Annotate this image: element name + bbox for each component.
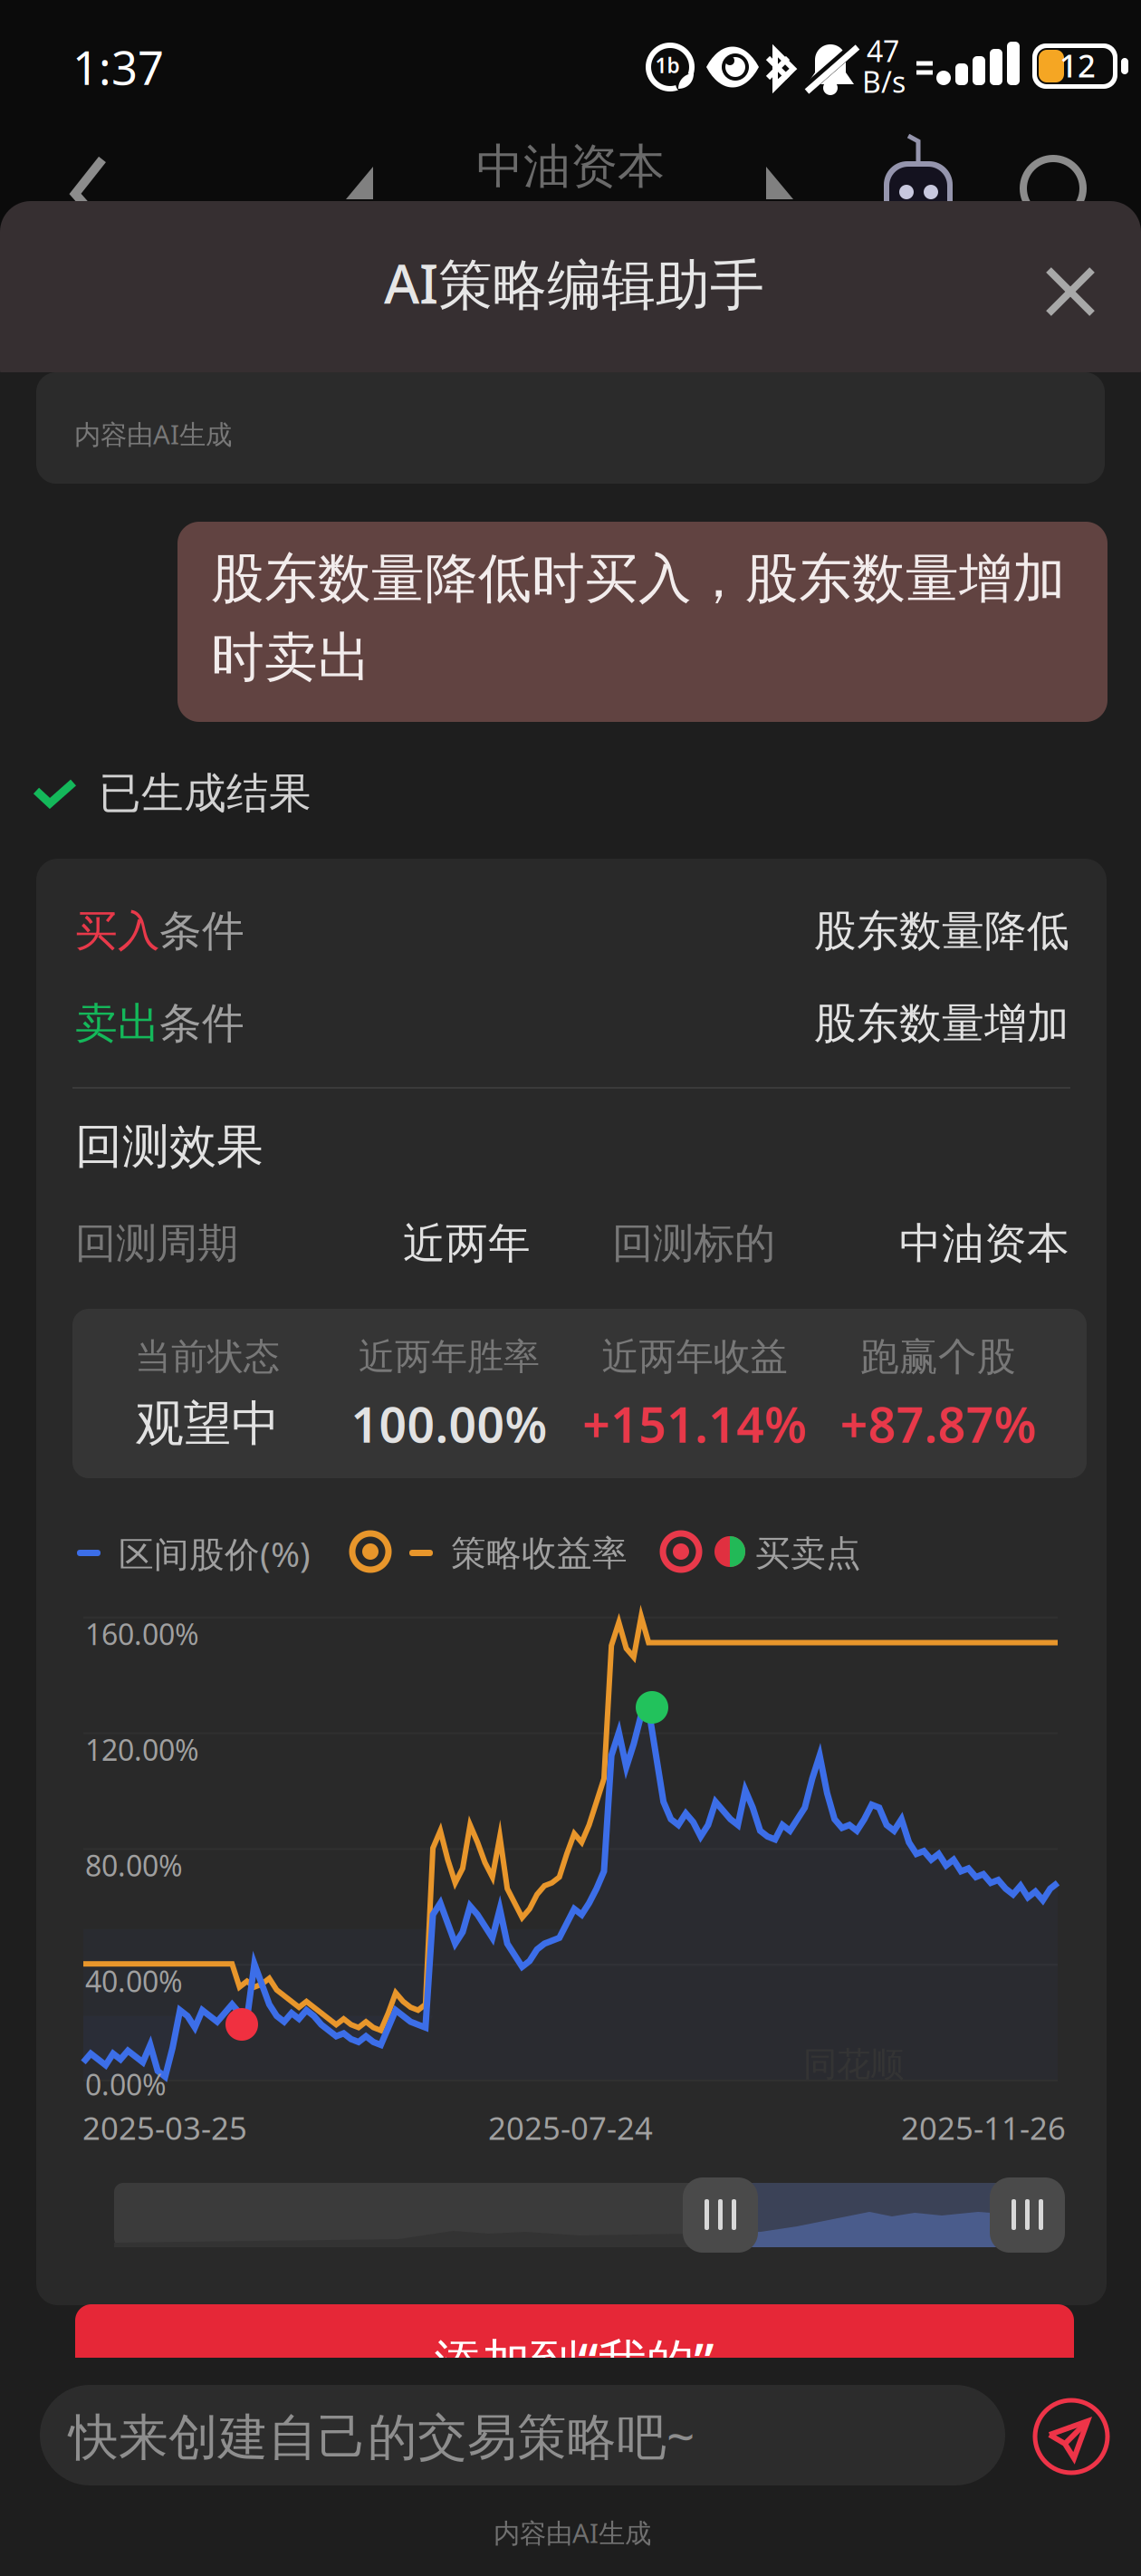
staticText: 近两年收益 — [602, 1334, 787, 1380]
staticText: 47 — [867, 32, 899, 70]
staticText: 股东数量降低时买入，股东数量增加 — [211, 546, 1066, 611]
staticText: 1:37 — [72, 37, 164, 98]
staticText: 条件 — [159, 905, 244, 957]
staticText: 1b — [655, 52, 680, 79]
staticText: 已生成结果 — [99, 767, 312, 819]
staticText: 观望中 — [135, 1394, 279, 1453]
staticText: 跑赢个股 — [860, 1333, 1016, 1381]
staticText: B/s — [862, 62, 906, 101]
staticText: 2025-07-24 — [488, 2107, 653, 2148]
staticText: 中油资本 — [476, 138, 665, 196]
button[interactable]: 关闭 — [0, 0, 1141, 2576]
staticText: 80.00% — [85, 1846, 183, 1885]
staticText: 条件 — [159, 998, 244, 1049]
button[interactable]: 调整区间 — [0, 0, 1141, 2576]
button[interactable]: 发送 — [0, 0, 1141, 2576]
staticText: 2025-03-25 — [82, 2107, 247, 2148]
staticText: 区间股价(%) — [119, 1530, 311, 1577]
staticText: 近两年 — [403, 1218, 531, 1270]
staticText: 回测标的 — [612, 1218, 775, 1269]
button[interactable]: 添加到“我的” — [0, 0, 1141, 2576]
staticText: 股东数量降低 — [814, 905, 1069, 957]
staticText: 添加到“我的” — [434, 2328, 714, 2392]
staticText: 160.00% — [85, 1615, 199, 1653]
staticText: 100.00% — [351, 1392, 547, 1456]
staticText: 股东数量增加 — [814, 998, 1069, 1049]
staticText: AI策略编辑助手 — [384, 246, 764, 319]
staticText: 2025-11-26 — [901, 2107, 1066, 2148]
staticText: 快来创建自己的交易策略吧~ — [69, 2403, 695, 2468]
staticText: 内容由AI生成 — [494, 2515, 651, 2550]
staticText: +151.14% — [582, 1392, 807, 1456]
staticText: 40.00% — [85, 1962, 183, 2000]
staticText: 时卖出 — [211, 625, 371, 690]
button[interactable]: 快来创建自己的交易策略吧~ — [0, 0, 1141, 2576]
staticText: 当前状态 — [135, 1335, 280, 1379]
staticText: +87.87% — [840, 1392, 1036, 1456]
staticText: 回测效果 — [75, 1118, 264, 1176]
staticText: 买入 — [75, 905, 160, 957]
staticText: 近两年胜率 — [359, 1335, 540, 1379]
staticText: 策略收益率 — [451, 1532, 628, 1575]
staticText: 内容由AI生成 — [74, 416, 232, 452]
staticText: 0.00% — [85, 2065, 167, 2103]
staticText: 120.00% — [85, 1730, 199, 1769]
button[interactable]: 调整区间 — [0, 0, 1141, 2576]
staticText: 中油资本 — [899, 1218, 1069, 1270]
staticText: 卖出 — [75, 998, 160, 1049]
staticText: 12 — [1059, 44, 1096, 86]
staticText: 同花顺 — [803, 2043, 904, 2085]
staticText: 回测周期 — [75, 1218, 238, 1269]
staticText: 买卖点 — [755, 1532, 861, 1575]
